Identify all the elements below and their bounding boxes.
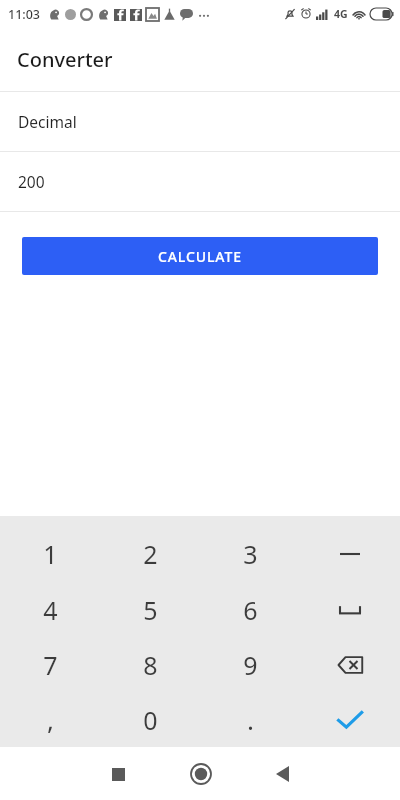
staticText: 1: [43, 537, 58, 571]
button[interactable]: Home: [178, 751, 224, 797]
staticText: 200: [18, 171, 45, 192]
staticText: Decimal: [18, 111, 77, 132]
staticText: 4: [43, 593, 58, 627]
button[interactable]: 9: [200, 637, 300, 692]
button[interactable]: Recents: [95, 751, 141, 797]
staticText: 7: [43, 648, 58, 682]
button[interactable]: 7: [0, 637, 100, 692]
staticText: 6: [243, 593, 258, 627]
button[interactable]: 5: [100, 582, 200, 637]
button[interactable]: 0: [100, 692, 200, 747]
button[interactable]: 8: [100, 637, 200, 692]
button[interactable]: CALCULATE: [22, 237, 378, 275]
button[interactable]: 1: [0, 526, 100, 582]
button[interactable]: Done: [300, 692, 400, 747]
staticText: 9: [243, 648, 258, 682]
staticText: 5: [143, 593, 158, 627]
staticText: 11:03: [8, 6, 41, 23]
staticText: .: [247, 702, 254, 737]
staticText: CALCULATE: [158, 247, 242, 266]
button[interactable]: 4: [0, 582, 100, 637]
button[interactable]: Space: [300, 582, 400, 637]
staticText: 2: [143, 537, 158, 571]
staticText: 4G: [334, 7, 348, 21]
staticText: 3: [243, 537, 258, 571]
button[interactable]: Backspace: [300, 637, 400, 692]
staticText: 0: [143, 703, 158, 737]
button[interactable]: ,: [0, 692, 100, 747]
staticText: 8: [143, 648, 158, 682]
button[interactable]: Decimal: [0, 92, 400, 151]
button[interactable]: 6: [200, 582, 300, 637]
staticText: ,: [47, 702, 54, 737]
button[interactable]: 2: [100, 526, 200, 582]
button[interactable]: 3: [200, 526, 300, 582]
staticText: Converter: [17, 46, 113, 73]
button[interactable]: 200: [0, 152, 400, 211]
button[interactable]: .: [200, 692, 300, 747]
button[interactable]: Minus: [300, 526, 400, 582]
button[interactable]: Back: [259, 751, 305, 797]
